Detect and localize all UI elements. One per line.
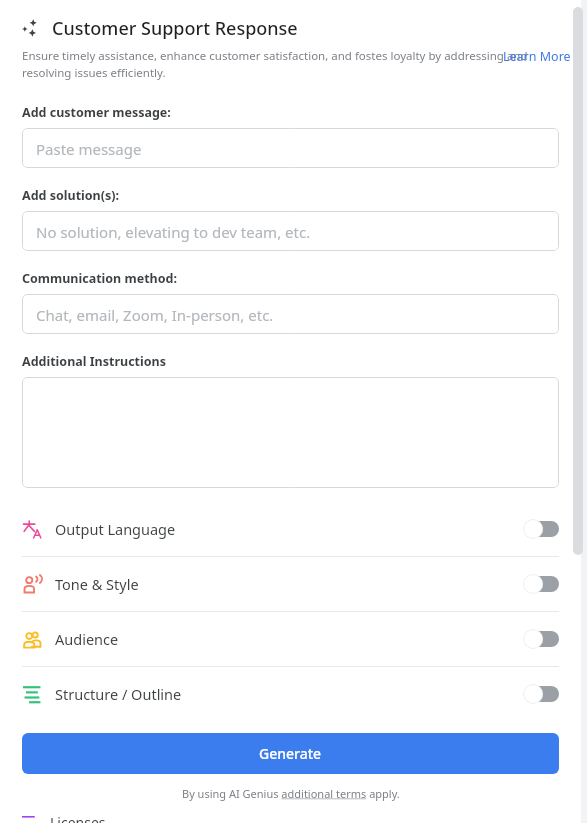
staticText: Chat, email, Zoom, In-person, etc. bbox=[36, 305, 274, 325]
staticText: Output Language bbox=[55, 519, 176, 539]
staticText: Audience bbox=[55, 629, 119, 649]
staticText: Structure / Outline bbox=[55, 684, 182, 704]
button[interactable]: No solution, elevating to dev team, etc. bbox=[22, 211, 559, 251]
staticText: Paste message bbox=[36, 139, 142, 159]
button[interactable]: Paste message bbox=[22, 128, 559, 168]
button[interactable]: Chat, email, Zoom, In-person, etc. bbox=[22, 294, 559, 334]
staticText: Additional Instructions bbox=[22, 353, 166, 370]
button[interactable]: Structure / Outline bbox=[0, 667, 581, 721]
button[interactable]: Generate bbox=[22, 733, 559, 774]
staticText: Learn More bbox=[503, 48, 571, 65]
staticText: Licenses bbox=[50, 813, 106, 823]
staticText: No solution, elevating to dev team, etc. bbox=[36, 222, 311, 242]
staticText: Add solution(s): bbox=[22, 187, 120, 204]
button[interactable]: Output Language bbox=[0, 502, 581, 556]
staticText: Tone & Style bbox=[55, 574, 139, 594]
staticText: Communication method: bbox=[22, 270, 177, 287]
staticText: By using AI Genius additional terms appl… bbox=[182, 786, 400, 801]
staticText: Add customer message: bbox=[22, 104, 171, 121]
staticText: Customer Support Response bbox=[52, 16, 298, 41]
staticText: Ensure timely assistance, enhance custom… bbox=[22, 48, 553, 80]
button[interactable] bbox=[22, 377, 559, 488]
button[interactable]: Learn More bbox=[503, 48, 571, 65]
staticText: Generate bbox=[259, 744, 322, 763]
button[interactable]: Tone & Style bbox=[0, 557, 581, 611]
other: AI sparkle bbox=[20, 18, 42, 40]
button[interactable]: Audience bbox=[0, 612, 581, 666]
